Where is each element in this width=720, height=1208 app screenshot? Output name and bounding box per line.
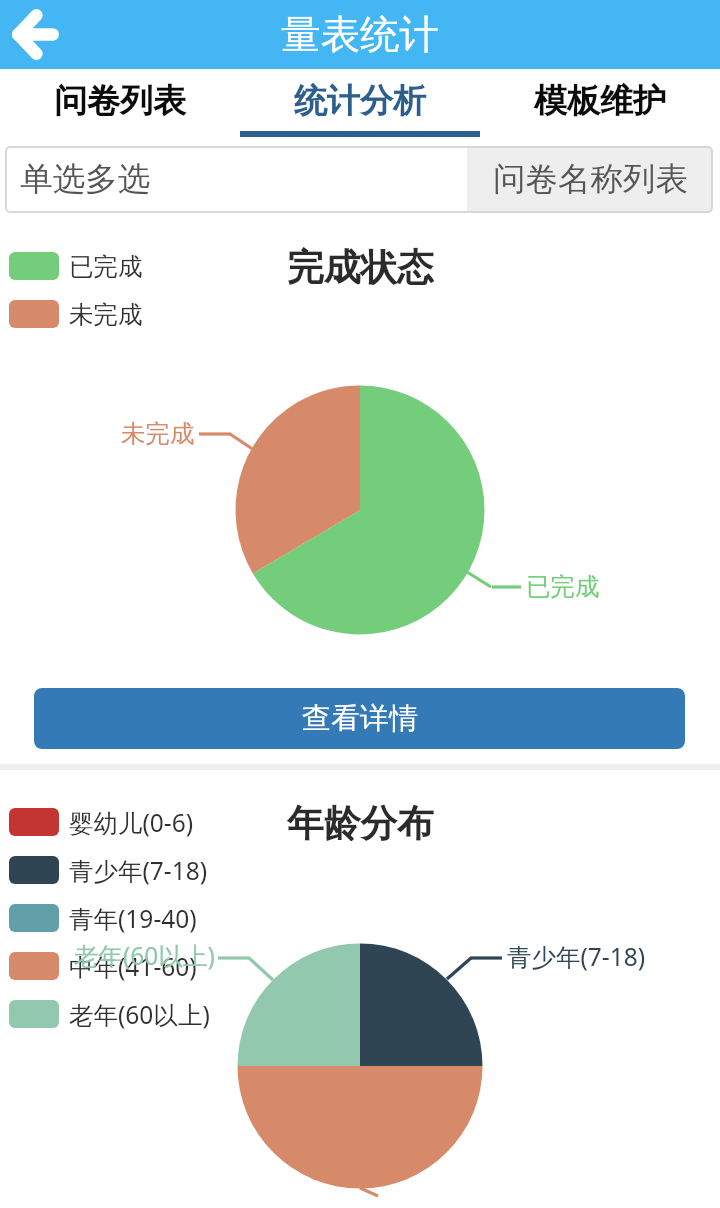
button[interactable]: 统计分析 xyxy=(240,69,480,137)
staticText: 青少年(7-18) xyxy=(507,940,646,973)
button[interactable]: 问卷名称列表 xyxy=(467,146,713,213)
staticText: 青年(19-40) xyxy=(69,902,197,935)
button[interactable]: 查看详情 xyxy=(34,688,685,749)
staticText: 年龄分布 xyxy=(287,801,434,841)
staticText: 统计分析 xyxy=(294,80,426,122)
staticText: 老年(60以上) xyxy=(74,939,215,972)
staticText: 完成状态 xyxy=(287,245,434,285)
staticText: 查看详情 xyxy=(302,700,418,737)
staticText: 未完成 xyxy=(121,418,195,449)
staticText: 未完成 xyxy=(69,299,143,330)
staticText: 已完成 xyxy=(69,251,143,282)
staticText: 量表统计 xyxy=(281,10,439,60)
button[interactable]: 单选多选 xyxy=(5,146,467,213)
staticText: 问卷名称列表 xyxy=(493,159,688,200)
staticText: 问卷列表 xyxy=(54,80,186,122)
button[interactable]: 问卷列表 xyxy=(0,69,240,137)
staticText: 模板维护 xyxy=(534,80,666,122)
staticText: 单选多选 xyxy=(20,159,150,200)
staticText: 老年(60以上) xyxy=(69,998,210,1031)
button[interactable]: Back xyxy=(0,0,70,69)
staticText: 中年(41-60) xyxy=(69,950,197,983)
button[interactable]: 模板维护 xyxy=(480,69,720,137)
staticText: 已完成 xyxy=(526,571,600,602)
staticText: 婴幼儿(0-6) xyxy=(69,806,194,839)
staticText: 青少年(7-18) xyxy=(69,854,208,887)
